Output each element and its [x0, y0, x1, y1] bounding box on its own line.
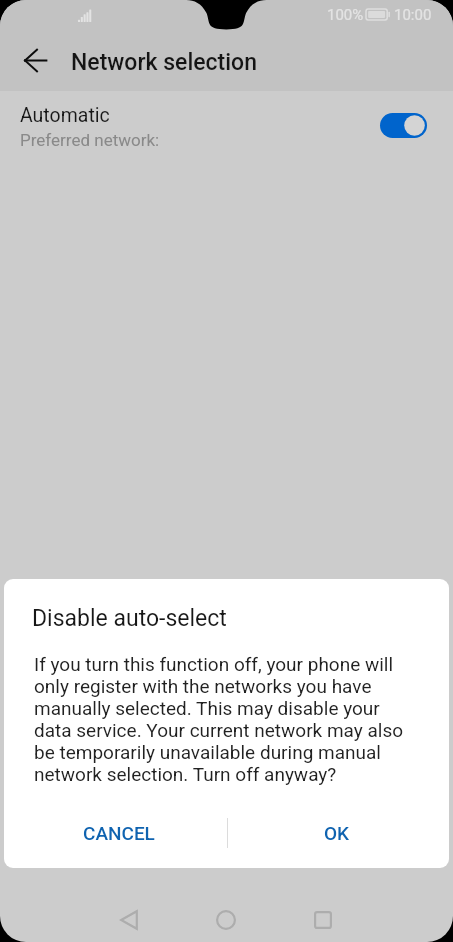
- button[interactable]: CANCEL: [4, 804, 227, 862]
- staticText: Preferred network:: [20, 130, 160, 150]
- button[interactable]: [0, 91, 453, 155]
- button[interactable]: OK: [228, 804, 449, 862]
- staticText: Automatic: [20, 104, 110, 127]
- staticText: 10:00: [394, 6, 432, 24]
- staticText: If you turn this function off, your phon…: [34, 653, 413, 785]
- button[interactable]: Back: [105, 896, 153, 942]
- button[interactable]: Automatic network selection: [380, 113, 427, 138]
- staticText: OK: [324, 822, 350, 844]
- staticText: Disable auto-select: [32, 605, 227, 632]
- staticText: 100%: [327, 6, 364, 24]
- staticText: CANCEL: [83, 822, 155, 844]
- staticText: Network selection: [71, 49, 257, 76]
- button[interactable]: Recent apps: [299, 896, 347, 942]
- button[interactable]: Back: [11, 36, 59, 84]
- button[interactable]: Home: [202, 896, 250, 942]
